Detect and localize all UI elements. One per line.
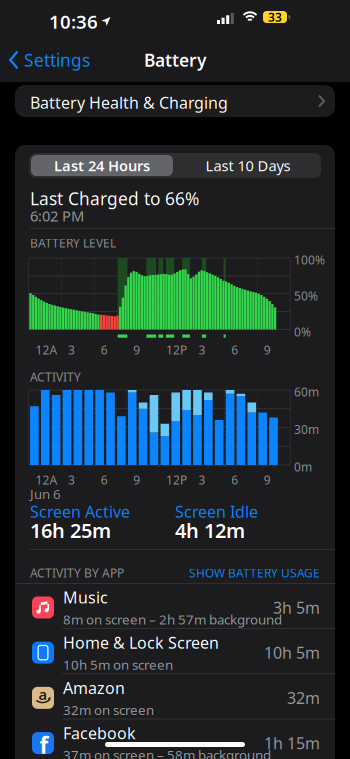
- staticText: 12P: [166, 342, 187, 358]
- staticText: 33: [268, 9, 282, 25]
- staticText: Facebook: [63, 722, 136, 743]
- staticText: 3h 5m: [273, 597, 320, 618]
- staticText: a: [38, 685, 47, 704]
- staticText: 12P: [166, 472, 187, 488]
- staticText: 6: [231, 342, 238, 358]
- staticText: Screen Active: [30, 501, 130, 522]
- staticText: BATTERY LEVEL: [30, 235, 116, 251]
- staticText: Jun 6: [30, 485, 61, 503]
- staticText: Battery Health & Charging: [30, 92, 228, 113]
- staticText: 9: [133, 472, 140, 488]
- staticText: 6: [101, 342, 108, 358]
- staticText: 10:36: [49, 9, 98, 34]
- staticText: f: [39, 730, 48, 759]
- button[interactable]: Music: [15, 584, 335, 628]
- staticText: 4h 12m: [175, 517, 245, 544]
- staticText: Screen Idle: [175, 501, 258, 522]
- button[interactable]: Battery Health & Charging: [15, 85, 335, 117]
- staticText: 32m on screen: [63, 701, 154, 719]
- staticText: 32m: [287, 687, 320, 708]
- staticText: Settings: [24, 48, 90, 71]
- staticText: 9: [264, 342, 271, 358]
- button[interactable]: f: [15, 719, 335, 759]
- button[interactable]: a: [15, 674, 335, 719]
- staticText: 10h 5m: [264, 642, 320, 663]
- staticText: 3: [68, 342, 75, 358]
- staticText: ACTIVITY BY APP: [30, 565, 124, 581]
- staticText: 9: [133, 342, 140, 358]
- staticText: 6: [101, 472, 108, 488]
- staticText: 12A: [35, 342, 57, 358]
- staticText: 16h 25m: [30, 517, 111, 544]
- staticText: 9: [264, 472, 271, 488]
- staticText: Last 24 Hours: [54, 156, 150, 175]
- staticText: 0m: [294, 459, 312, 475]
- staticText: 8m on screen – 2h 57m background: [63, 610, 282, 628]
- staticText: Last 10 Days: [205, 156, 290, 175]
- button[interactable]: Last 24 Hours: [31, 155, 173, 176]
- staticText: ACTIVITY: [30, 369, 81, 385]
- staticText: 12A: [35, 472, 57, 488]
- staticText: Battery: [144, 48, 206, 71]
- staticText: Amazon: [63, 677, 125, 698]
- button[interactable]: Home & Lock Screen: [15, 629, 335, 673]
- button[interactable]: Last 10 Days: [177, 155, 319, 176]
- button[interactable]: Settings: [9, 38, 90, 82]
- staticText: 100%: [294, 252, 325, 268]
- button[interactable]: SHOW BATTERY USAGE: [189, 565, 320, 581]
- staticText: Last Charged to 66%: [30, 187, 199, 210]
- staticText: 6:02 PM: [30, 206, 84, 225]
- staticText: 30m: [294, 421, 319, 437]
- staticText: Home & Lock Screen: [63, 632, 219, 653]
- staticText: 3: [198, 472, 205, 488]
- staticText: 1h 15m: [264, 732, 320, 754]
- staticText: 50%: [294, 288, 318, 304]
- staticText: 3: [68, 472, 75, 488]
- staticText: 3: [198, 342, 205, 358]
- staticText: 37m on screen – 58m background: [63, 746, 271, 759]
- staticText: 0%: [294, 324, 311, 340]
- staticText: 60m: [294, 384, 319, 400]
- staticText: SHOW BATTERY USAGE: [189, 565, 320, 581]
- staticText: 10h 5m on screen: [63, 656, 173, 673]
- staticText: Music: [63, 587, 108, 608]
- staticText: 6: [231, 472, 238, 488]
